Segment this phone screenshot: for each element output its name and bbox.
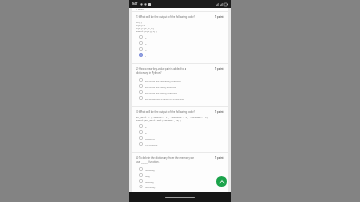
button[interactable]: By using the append() method: [136, 77, 224, 83]
button[interactable]: By using the keys() method: [136, 89, 224, 95]
staticText: 1) What will be the output of the follow…: [136, 15, 213, 19]
button[interactable]: 1: [136, 52, 224, 58]
button[interactable]: remove(): [136, 184, 224, 189]
staticText: delete(): [145, 180, 154, 183]
button[interactable]: 4: [136, 46, 224, 52]
staticText: 4: [145, 48, 147, 51]
button[interactable]: delete(): [136, 178, 224, 184]
button[interactable]: 2: [136, 34, 224, 40]
button[interactable]: KeyError: [136, 135, 224, 141]
staticText: 1 point: [215, 156, 224, 159]
staticText: 1 point: [136, 8, 144, 11]
staticText: b: [145, 131, 147, 134]
staticText: 1: [145, 54, 147, 57]
staticText: a[1]=[2,3,4]: [136, 26, 155, 29]
button[interactable]: By using the add() method: [136, 83, 224, 89]
staticText: 9:47: [132, 2, 138, 6]
staticText: del(): [145, 174, 151, 177]
staticText: By assigning a value to a new key: [145, 97, 185, 100]
button[interactable]: update(): [136, 166, 224, 172]
staticText: 3) What will be the output of the follow…: [136, 110, 213, 114]
staticText: 3: [145, 42, 147, 45]
staticText: 1 point: [215, 110, 224, 113]
button[interactable]: b: [136, 129, 224, 135]
staticText: 2) How a new key-value pair is added to …: [136, 67, 213, 71]
staticText: dictionary in Python?: [136, 71, 162, 75]
staticText: 1 point: [215, 15, 224, 18]
staticText: print(my_dict.get("grape", 0)): [136, 118, 182, 121]
staticText: my_dict = {"apple": 1, "banana": 2, "ora…: [136, 115, 209, 118]
staticText: a={}: [136, 20, 143, 23]
staticText: a[2]=1: [136, 23, 146, 26]
staticText: 2: [145, 36, 147, 39]
button[interactable]: By assigning a value to a new key: [136, 95, 224, 101]
staticText: a: [145, 125, 147, 128]
staticText: By using the append() method: [145, 79, 181, 82]
button[interactable]: del(): [136, 172, 224, 178]
staticText: KeyError: [145, 137, 156, 140]
staticText: 4) To delete the dictionary from the mem…: [136, 156, 213, 160]
staticText: No Output: [145, 143, 158, 146]
button[interactable]: 3: [136, 40, 224, 46]
staticText: use ______ function.: [136, 160, 160, 164]
button[interactable]: a: [136, 123, 224, 129]
staticText: remove(): [145, 185, 156, 188]
staticText: By using the keys() method: [145, 91, 177, 94]
staticText: update(): [145, 168, 155, 171]
staticText: 1 point: [215, 67, 224, 70]
button[interactable]: No Output: [136, 141, 224, 147]
button[interactable]: Scroll to top: [216, 176, 227, 187]
staticText: print(a[1][1]): [136, 29, 158, 32]
staticText: By using the add() method: [145, 85, 177, 88]
